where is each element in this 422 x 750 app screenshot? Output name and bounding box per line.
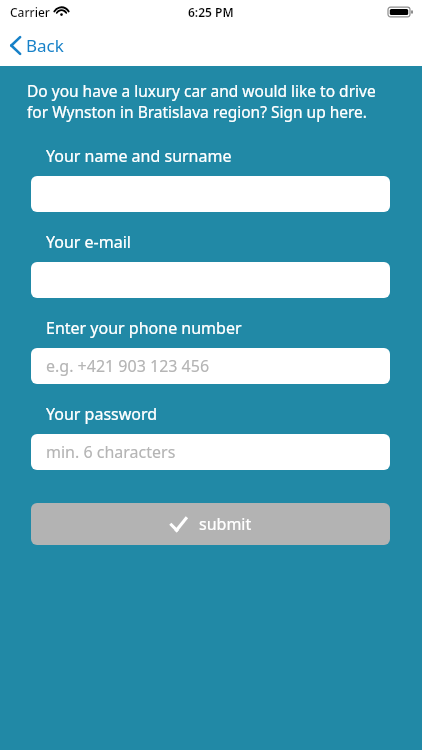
button[interactable]	[31, 176, 390, 212]
staticText: min. 6 characters	[46, 441, 176, 463]
button[interactable]	[31, 262, 390, 298]
other: Submit	[170, 516, 187, 533]
button[interactable]: Back	[0, 30, 76, 61]
staticText: Enter your phone number	[46, 317, 242, 339]
button[interactable]: min. 6 characters	[31, 434, 390, 470]
button[interactable]: Submit	[31, 503, 390, 545]
staticText: Do you have a luxury car and would like …	[27, 80, 398, 123]
staticText: Your e-mail	[46, 231, 131, 253]
staticText: Carrier	[10, 4, 50, 20]
staticText: 6:25 PM	[188, 4, 234, 20]
staticText: Your name and surname	[46, 145, 232, 167]
staticText: Back	[26, 34, 64, 57]
staticText: Your password	[46, 403, 158, 425]
staticText: e.g. +421 903 123 456	[46, 355, 210, 377]
button[interactable]: e.g. +421 903 123 456	[31, 348, 390, 384]
staticText: submit	[199, 513, 252, 535]
